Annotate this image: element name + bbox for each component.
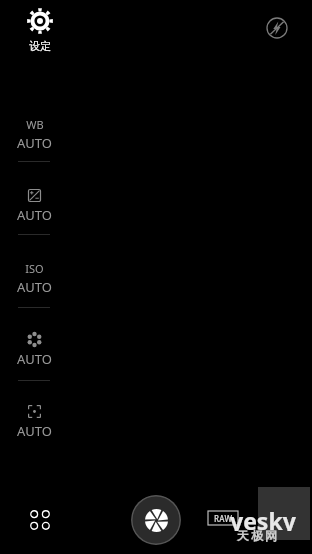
staticText: 设定 — [29, 39, 51, 53]
button[interactable]: AUTO — [4, 401, 64, 443]
staticText: AUTO — [17, 422, 52, 440]
staticText: ISO — [25, 261, 44, 276]
staticText: AUTO — [17, 134, 52, 152]
button[interactable]: 设定 — [18, 8, 62, 64]
staticText: AUTO — [17, 206, 52, 224]
button[interactable]: Flash off — [263, 14, 291, 42]
button[interactable]: RAW — [208, 511, 238, 525]
staticText: WB — [26, 117, 44, 132]
button[interactable]: Modes — [22, 502, 58, 538]
staticText: AUTO — [17, 350, 52, 368]
button[interactable]: WB — [4, 113, 64, 153]
staticText: RAW — [214, 513, 233, 524]
button[interactable]: Shutter — [131, 495, 181, 545]
button[interactable]: ISO — [4, 257, 64, 297]
button[interactable]: AUTO — [4, 185, 64, 227]
button[interactable]: AUTO — [4, 329, 64, 371]
staticText: AUTO — [17, 278, 52, 296]
staticText: 天极网 — [236, 528, 278, 543]
staticText: yesky — [230, 505, 296, 531]
